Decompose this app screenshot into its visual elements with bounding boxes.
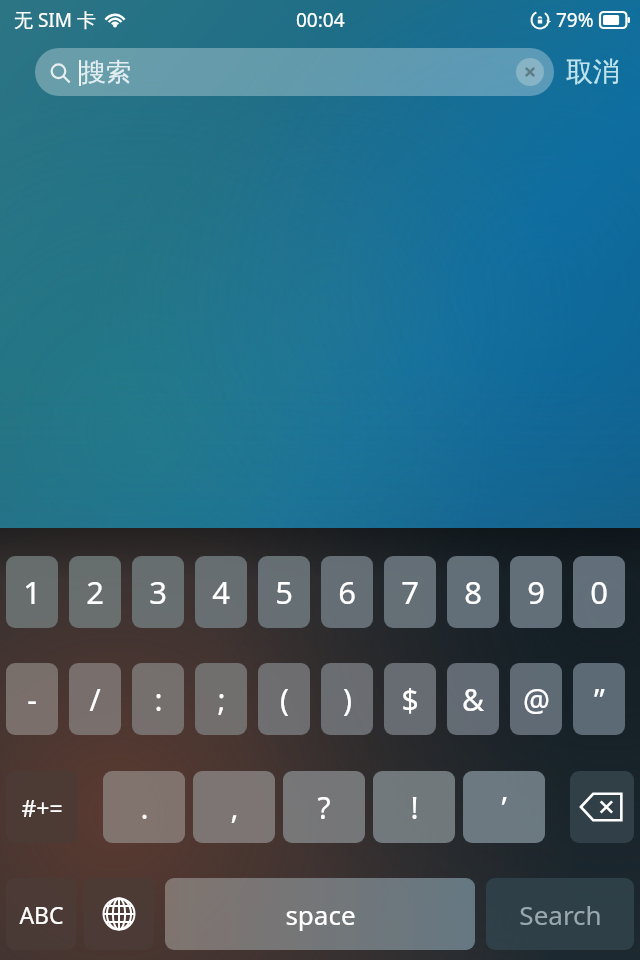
- button[interactable]: .: [103, 771, 185, 843]
- button[interactable]: 搜索: [35, 48, 554, 96]
- button[interactable]: 9: [510, 556, 562, 628]
- staticText: 取消: [566, 55, 620, 89]
- button[interactable]: Backspace: [570, 771, 634, 843]
- staticText: ”: [594, 679, 605, 720]
- staticText: space: [285, 897, 356, 932]
- staticText: 8: [464, 571, 482, 613]
- button[interactable]: 4: [195, 556, 247, 628]
- staticText: 3: [149, 571, 167, 613]
- staticText: 搜索: [81, 57, 131, 88]
- button[interactable]: Switch keyboard language: [84, 878, 154, 950]
- staticText: 7: [401, 571, 419, 613]
- staticText: !: [410, 787, 419, 828]
- button[interactable]: space: [165, 878, 475, 950]
- staticText: 79%: [556, 7, 594, 33]
- staticText: ABC: [19, 899, 64, 930]
- button[interactable]: !: [373, 771, 455, 843]
- button[interactable]: @: [510, 663, 562, 735]
- button[interactable]: ABC: [6, 878, 76, 950]
- staticText: 无 SIM 卡: [14, 7, 96, 33]
- staticText: 5: [275, 571, 293, 613]
- staticText: :: [154, 679, 163, 720]
- button[interactable]: 2: [69, 556, 121, 628]
- staticText: ’: [501, 787, 507, 828]
- button[interactable]: ?: [283, 771, 365, 843]
- button[interactable]: 3: [132, 556, 184, 628]
- staticText: 0: [590, 571, 608, 613]
- staticText: /: [89, 679, 101, 720]
- button[interactable]: ’: [463, 771, 545, 843]
- staticText: -: [27, 679, 37, 720]
- button[interactable]: -: [6, 663, 58, 735]
- staticText: 2: [86, 571, 104, 613]
- staticText: 9: [527, 571, 545, 613]
- staticText: &: [462, 679, 484, 720]
- button[interactable]: 1: [6, 556, 58, 628]
- staticText: #+=: [21, 792, 63, 823]
- button[interactable]: Search: [486, 878, 634, 950]
- button[interactable]: &: [447, 663, 499, 735]
- button[interactable]: ;: [195, 663, 247, 735]
- button[interactable]: ): [321, 663, 373, 735]
- button[interactable]: Clear text: [516, 58, 544, 86]
- button[interactable]: $: [384, 663, 436, 735]
- staticText: ,: [230, 787, 239, 828]
- staticText: $: [401, 679, 419, 720]
- staticText: 00:04: [296, 7, 345, 33]
- staticText: 6: [338, 571, 356, 613]
- staticText: 1: [23, 571, 41, 613]
- button[interactable]: #+=: [6, 771, 78, 843]
- button[interactable]: /: [69, 663, 121, 735]
- button[interactable]: 6: [321, 556, 373, 628]
- staticText: .: [140, 787, 149, 828]
- button[interactable]: 8: [447, 556, 499, 628]
- button[interactable]: ”: [573, 663, 625, 735]
- staticText: ): [343, 679, 352, 720]
- button[interactable]: 5: [258, 556, 310, 628]
- button[interactable]: 7: [384, 556, 436, 628]
- button[interactable]: 取消: [566, 55, 620, 89]
- staticText: 4: [212, 571, 230, 613]
- staticText: (: [280, 679, 289, 720]
- staticText: Search: [519, 897, 602, 932]
- staticText: @: [523, 679, 550, 720]
- staticText: ;: [217, 679, 226, 720]
- button[interactable]: :: [132, 663, 184, 735]
- button[interactable]: ,: [193, 771, 275, 843]
- staticText: ?: [317, 787, 331, 828]
- button[interactable]: (: [258, 663, 310, 735]
- button[interactable]: 0: [573, 556, 625, 628]
